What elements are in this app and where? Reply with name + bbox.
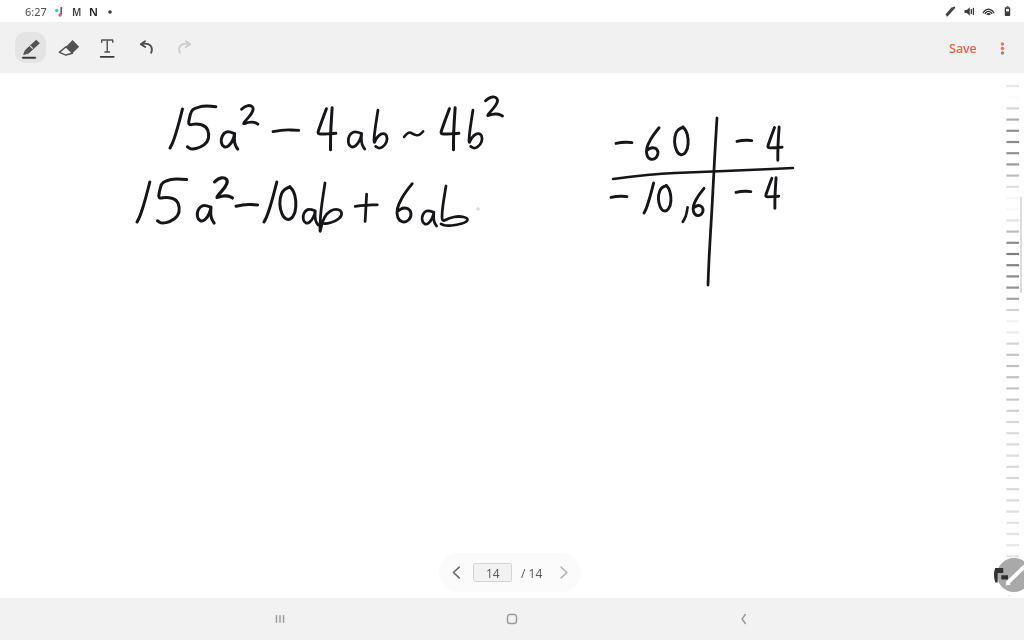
button[interactable]: Redo [169, 32, 200, 63]
button[interactable]: Page number [473, 563, 512, 582]
staticText: Save [949, 40, 977, 57]
button[interactable]: More options [987, 33, 1017, 63]
staticText: M [72, 5, 82, 19]
button[interactable]: Save [941, 34, 985, 63]
button[interactable]: Home [486, 598, 538, 640]
button[interactable]: Pen [15, 32, 46, 63]
staticText: N [89, 4, 98, 19]
button[interactable]: Next page [549, 558, 578, 587]
button[interactable]: Edit note [994, 553, 1024, 597]
button[interactable]: Text [91, 32, 122, 63]
button[interactable]: Previous page [442, 558, 471, 587]
staticText: / 14 [521, 565, 543, 581]
staticText: 14 [486, 565, 500, 581]
button[interactable]: Undo [130, 32, 161, 63]
button[interactable]: Recents [254, 598, 306, 640]
button[interactable]: Eraser [53, 32, 84, 63]
staticText: 6:27 [25, 4, 47, 19]
button[interactable]: Back [718, 598, 770, 640]
